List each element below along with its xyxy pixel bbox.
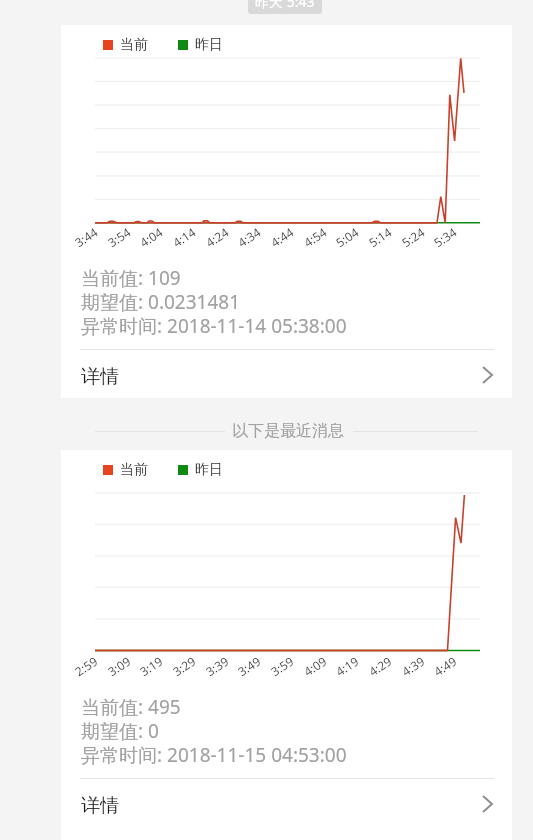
- staticText: 异常时间: 2018-11-15 04:53:00: [81, 742, 347, 768]
- staticText: 4:04: [137, 224, 165, 250]
- staticText: 昨天 5:43: [255, 0, 315, 11]
- staticText: 2:59: [72, 653, 100, 679]
- staticText: 当前值: 495: [81, 694, 181, 720]
- staticText: 4:29: [366, 653, 394, 679]
- staticText: 当前: [120, 461, 148, 479]
- staticText: 4:44: [268, 224, 296, 250]
- staticText: 期望值: 0: [81, 718, 159, 744]
- staticText: 昨日: [195, 461, 223, 479]
- staticText: 期望值: 0.0231481: [81, 289, 241, 315]
- staticText: 4:24: [203, 224, 231, 250]
- staticText: 4:09: [301, 653, 329, 679]
- staticText: 4:39: [399, 653, 427, 679]
- staticText: 3:49: [235, 653, 263, 679]
- staticText: 3:39: [203, 653, 231, 679]
- staticText: 昨日: [195, 36, 223, 54]
- staticText: 3:59: [268, 653, 296, 679]
- staticText: 以下是最近消息: [232, 421, 344, 441]
- staticText: 4:14: [170, 224, 198, 250]
- button[interactable]: 详情: [61, 779, 512, 840]
- staticText: 5:04: [333, 224, 361, 250]
- staticText: 详情: [81, 794, 119, 818]
- staticText: 5:34: [431, 224, 459, 250]
- staticText: 5:14: [366, 224, 394, 250]
- staticText: 3:44: [72, 224, 100, 250]
- staticText: 当前值: 109: [81, 265, 181, 291]
- staticText: 详情: [81, 365, 119, 389]
- staticText: 4:34: [235, 224, 263, 250]
- button[interactable]: 详情: [61, 350, 512, 398]
- staticText: 3:29: [170, 653, 198, 679]
- staticText: 4:19: [333, 653, 361, 679]
- staticText: 异常时间: 2018-11-14 05:38:00: [81, 313, 347, 339]
- staticText: 4:49: [431, 653, 459, 679]
- staticText: 3:19: [137, 653, 165, 679]
- staticText: 3:54: [105, 224, 133, 250]
- staticText: 4:54: [301, 224, 329, 250]
- other: 详情: [481, 363, 505, 387]
- other: 详情: [481, 792, 505, 816]
- staticText: 3:09: [105, 653, 133, 679]
- staticText: 当前: [120, 36, 148, 54]
- staticText: 5:24: [399, 224, 427, 250]
